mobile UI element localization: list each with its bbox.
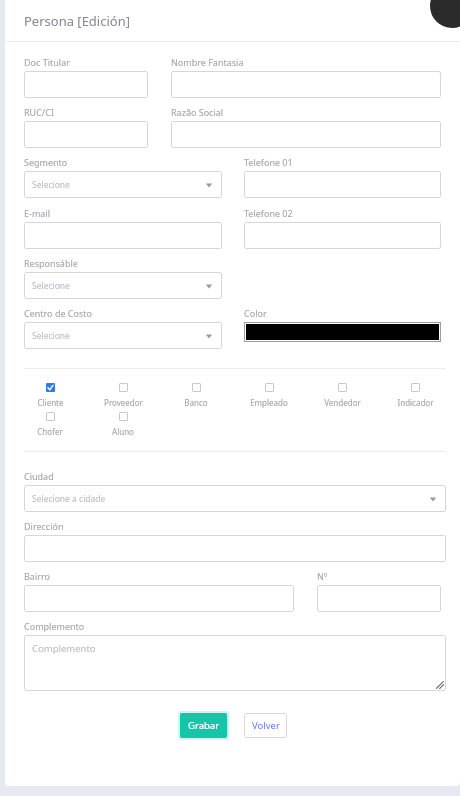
button[interactable]: Indicador	[389, 383, 441, 408]
staticText: Selecione	[32, 330, 70, 342]
button[interactable]	[244, 171, 441, 198]
staticText: Cliente	[37, 397, 64, 408]
staticText: Selecione	[32, 280, 70, 292]
staticText: Complemento	[32, 642, 96, 655]
staticText: Selecione	[32, 179, 70, 191]
button[interactable]: Aluno	[97, 412, 149, 437]
staticText: Centro de Costo	[24, 307, 92, 319]
staticText: Chofer	[37, 426, 63, 437]
staticText: Nº	[317, 570, 328, 582]
button[interactable]: Selecione	[24, 272, 222, 299]
button[interactable]: Banco	[170, 383, 222, 408]
button[interactable]	[244, 222, 441, 249]
button[interactable]	[24, 121, 148, 148]
button[interactable]: Chofer	[24, 412, 76, 437]
staticText: Banco	[184, 397, 208, 408]
button[interactable]	[24, 535, 446, 562]
button[interactable]: Proveedor	[97, 383, 149, 408]
staticText: Grabar	[188, 719, 220, 732]
button[interactable]: Selecione	[24, 322, 222, 349]
staticText: Telefone 02	[244, 207, 293, 219]
button[interactable]	[24, 222, 222, 249]
button[interactable]: Grabar	[180, 713, 227, 738]
staticText: Color	[244, 307, 267, 319]
staticText: Selecione a cidade	[32, 493, 106, 505]
staticText: RUC/CI	[24, 106, 54, 118]
button[interactable]: Color picker	[244, 322, 441, 342]
staticText: Persona [Edición]	[24, 12, 130, 30]
staticText: Razão Social	[171, 106, 224, 118]
staticText: Empleado	[250, 397, 288, 408]
staticText: Volver	[252, 719, 280, 732]
staticText: Dirección	[24, 520, 64, 532]
staticText: Ciudad	[24, 470, 54, 482]
staticText: Nombre Fantasia	[171, 56, 244, 68]
staticText: Vendedor	[324, 397, 361, 408]
staticText: Bairro	[24, 570, 50, 582]
button[interactable]: Volver	[244, 713, 287, 738]
staticText: Aluno	[112, 426, 134, 437]
staticText: Doc Titular	[24, 56, 70, 68]
button[interactable]: Cliente	[24, 383, 76, 408]
button[interactable]: Complemento	[24, 635, 446, 691]
staticText: Indicador	[397, 397, 434, 408]
staticText: Responsáble	[24, 257, 78, 269]
button[interactable]	[24, 71, 148, 98]
staticText: E-mail	[24, 207, 51, 219]
button[interactable]: Empleado	[243, 383, 295, 408]
button[interactable]: Vendedor	[316, 383, 368, 408]
staticText: Segmento	[24, 156, 68, 168]
button[interactable]: Selecione a cidade	[24, 485, 446, 512]
staticText: Complemento	[24, 620, 85, 632]
button[interactable]	[171, 71, 441, 98]
staticText: Telefone 01	[244, 156, 293, 168]
staticText: Proveedor	[104, 397, 143, 408]
button[interactable]	[24, 585, 294, 612]
button[interactable]	[317, 585, 441, 612]
button[interactable]	[171, 121, 441, 148]
button[interactable]: Selecione	[24, 171, 222, 198]
